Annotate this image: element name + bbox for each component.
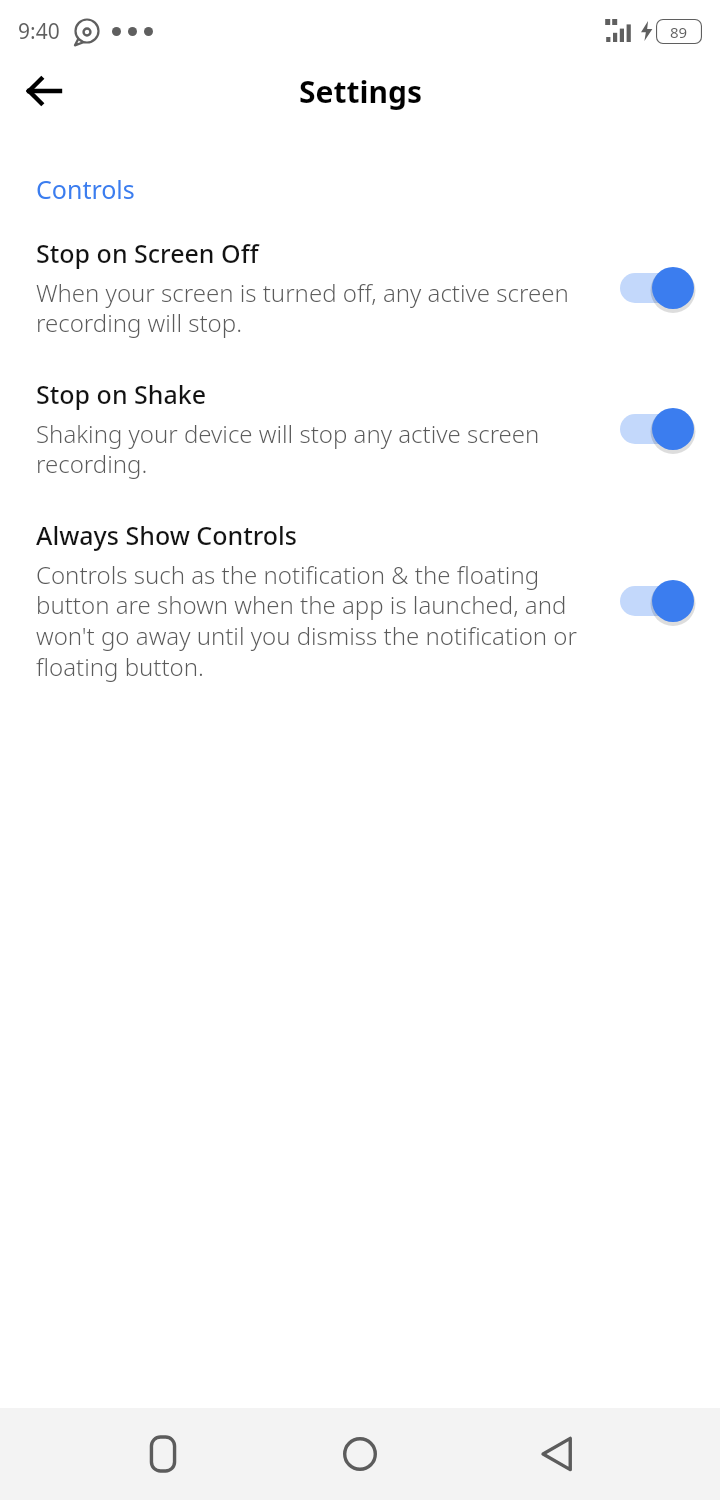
staticText: Stop on Shake (36, 377, 207, 411)
button[interactable]: Toggle (618, 405, 696, 453)
staticText: When your screen is turned off, any acti… (36, 276, 602, 339)
button[interactable]: Home (325, 1419, 395, 1489)
staticText: Settings (299, 71, 422, 112)
staticText: Stop on Screen Off (36, 236, 259, 270)
button[interactable]: Always Show Controls (0, 518, 720, 683)
button[interactable]: Toggle (618, 577, 696, 625)
staticText: 89 (670, 22, 688, 42)
button[interactable]: Stop on Shake (0, 377, 720, 480)
staticText: Controls such as the notification & the … (36, 558, 602, 683)
staticText: Always Show Controls (36, 518, 297, 552)
button[interactable]: Toggle (618, 264, 696, 312)
staticText: Controls (36, 172, 135, 206)
staticText: Shaking your device will stop any active… (36, 417, 602, 480)
staticText: 9:40 (18, 17, 60, 46)
button[interactable]: Back (523, 1419, 593, 1489)
button[interactable]: Stop on Screen Off (0, 236, 720, 339)
button[interactable]: Recents (128, 1419, 198, 1489)
button[interactable]: Back (18, 65, 70, 117)
